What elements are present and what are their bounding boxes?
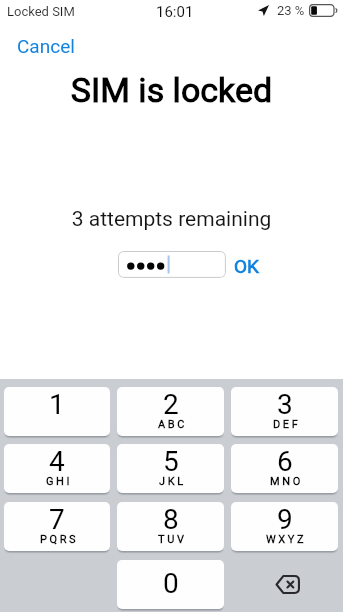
staticText: MNO: [270, 475, 303, 488]
button[interactable]: 4: [4, 444, 110, 493]
button[interactable]: 7: [4, 502, 110, 551]
button[interactable]: 2: [117, 387, 224, 436]
staticText: 3 attempts remaining: [0, 207, 343, 232]
staticText: WXYZ: [266, 533, 307, 546]
staticText: GHI: [46, 475, 73, 488]
button[interactable]: Backspace: [231, 560, 338, 609]
button[interactable]: OK: [228, 252, 265, 280]
staticText: 2: [163, 388, 179, 421]
staticText: 23 %: [277, 3, 305, 18]
staticText: Cancel: [17, 35, 75, 57]
button[interactable]: 9: [231, 502, 338, 551]
staticText: ABC: [158, 418, 187, 431]
staticText: TUV: [158, 533, 187, 546]
staticText: OK: [234, 255, 259, 277]
staticText: 3: [277, 388, 293, 421]
staticText: DEF: [273, 418, 301, 431]
staticText: Locked SIM: [7, 4, 75, 19]
button[interactable]: 8: [117, 502, 224, 551]
staticText: 16:01: [156, 3, 194, 21]
button[interactable]: Cancel: [11, 31, 81, 61]
staticText: JKL: [159, 475, 186, 488]
staticText: PQRS: [40, 533, 79, 546]
button[interactable]: 0: [117, 560, 224, 609]
button[interactable]: [118, 251, 226, 278]
staticText: SIM is locked: [0, 70, 343, 110]
button[interactable]: 6: [231, 444, 338, 493]
button[interactable]: 3: [231, 387, 338, 436]
staticText: 6: [277, 445, 293, 478]
staticText: 1: [49, 388, 65, 421]
staticText: 9: [277, 503, 293, 536]
staticText: 5: [163, 445, 179, 478]
staticText: 0: [163, 567, 179, 600]
staticText: 7: [49, 503, 65, 536]
staticText: 4: [49, 445, 65, 478]
staticText: 8: [163, 503, 179, 536]
button[interactable]: 1: [4, 387, 110, 436]
button[interactable]: 5: [117, 444, 224, 493]
